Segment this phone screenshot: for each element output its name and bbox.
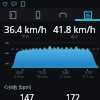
staticText: 172 bbox=[66, 92, 80, 100]
button[interactable]: Workout bbox=[50, 8, 75, 21]
staticText: 10:40 bbox=[61, 71, 69, 75]
other: App notification bbox=[20, 1, 26, 7]
staticText: 心拍数 (bpm) bbox=[4, 84, 32, 90]
staticText: 147 bbox=[20, 92, 34, 100]
staticText: 平均 bbox=[22, 35, 29, 39]
button[interactable]: Speed chart bbox=[0, 39, 100, 69]
button[interactable]: 41.8 km/h bbox=[50, 23, 99, 39]
button[interactable]: 心拍数 (bpm) bbox=[0, 84, 100, 100]
staticText: 8.9 km bbox=[14, 75, 24, 79]
button[interactable]: Statistics bbox=[75, 8, 100, 21]
staticText: 37.1 km bbox=[82, 75, 94, 79]
other: Heart notification bbox=[2, 1, 8, 7]
staticText: 10:20 bbox=[38, 71, 46, 75]
button[interactable]: Device bbox=[25, 8, 50, 21]
staticText: 36.4 km/h bbox=[4, 23, 47, 35]
staticText: 27.6 km bbox=[59, 75, 71, 79]
staticText: 41.8 km/h bbox=[53, 23, 96, 35]
other: Message notification bbox=[11, 1, 17, 7]
button[interactable]: Activities bbox=[0, 8, 25, 21]
staticText: 11:00 bbox=[84, 71, 92, 75]
staticText: 10:00 bbox=[15, 71, 23, 75]
staticText: 18.2 km bbox=[36, 75, 48, 79]
button[interactable]: 36.4 km/h bbox=[1, 23, 50, 39]
staticText: 最大 bbox=[71, 35, 78, 39]
